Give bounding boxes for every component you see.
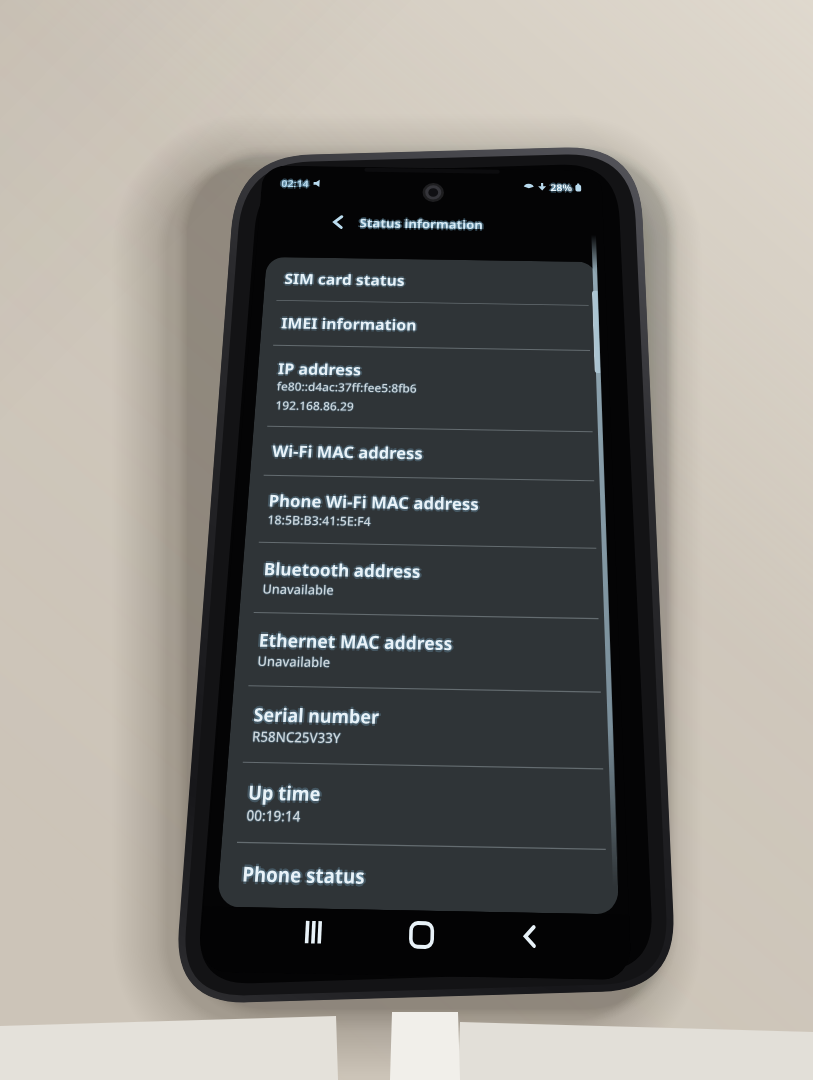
- staticText: Unavailable: [257, 651, 332, 670]
- button[interactable]: Home: [390, 910, 452, 959]
- button[interactable]: Serial number: [228, 686, 614, 769]
- staticText: fe80::d4ac:37ff:fee5:8fb6 192.168.86.29: [275, 379, 417, 416]
- button[interactable]: Recent apps: [282, 908, 345, 957]
- staticText: IMEI information: [281, 311, 418, 333]
- staticText: Phone Wi-Fi MAC address: [268, 487, 479, 513]
- staticText: Unavailable: [262, 579, 335, 598]
- staticText: Status information: [361, 214, 485, 232]
- staticText: Bluetooth address: [263, 557, 421, 583]
- staticText: 18:5B:B3:41:5E:F4: [267, 512, 372, 531]
- staticText: Wi-Fi MAC address: [271, 442, 423, 466]
- staticText: Phone Wi-Fi MAC address: [268, 491, 479, 517]
- staticText: SIM card status: [282, 269, 403, 290]
- staticText: Unavailable: [257, 653, 331, 673]
- button[interactable]: IP address: [254, 345, 602, 431]
- button[interactable]: Wi-Fi MAC address: [250, 427, 604, 480]
- button[interactable]: Back: [500, 912, 561, 961]
- staticText: fe80::d4ac:37ff:fee5:8fb6 192.168.86.29: [275, 379, 417, 415]
- staticText: SIM card status: [286, 269, 407, 290]
- staticText: SIM card status: [284, 267, 405, 288]
- staticText: Phone status: [241, 860, 365, 890]
- staticText: Wi-Fi MAC address: [271, 440, 423, 464]
- staticText: Phone status: [239, 860, 363, 890]
- staticText: IP address: [275, 358, 360, 380]
- staticText: Up time: [245, 779, 320, 807]
- staticText: Unavailable: [257, 652, 331, 671]
- staticText: 18:5B:B3:41:5E:F4: [267, 511, 372, 530]
- staticText: Unavailable: [258, 652, 332, 671]
- staticText: Wi-Fi MAC address: [270, 440, 421, 464]
- staticText: 28%: [550, 182, 573, 195]
- staticText: Unavailable: [262, 580, 335, 599]
- staticText: 18:5B:B3:41:5E:F4: [266, 511, 371, 530]
- staticText: 00:19:14: [246, 807, 301, 827]
- staticText: Unavailable: [262, 581, 335, 600]
- staticText: Unavailable: [256, 652, 330, 671]
- staticText: 00:19:14: [245, 805, 300, 826]
- staticText: 02:14: [281, 177, 309, 190]
- button[interactable]: SIM card status: [263, 257, 598, 305]
- staticText: 28%: [548, 181, 571, 194]
- staticText: 02:14: [279, 177, 307, 190]
- staticText: SIM card status: [284, 269, 405, 290]
- staticText: Bluetooth address: [265, 557, 424, 583]
- staticText: 28%: [550, 179, 573, 192]
- staticText: 18:5B:B3:41:5E:F4: [267, 510, 372, 529]
- staticText: IP address: [277, 358, 362, 380]
- staticText: Phone Wi-Fi MAC address: [266, 489, 477, 515]
- staticText: Bluetooth address: [261, 557, 419, 583]
- button[interactable]: Back: [327, 212, 349, 232]
- staticText: Phone status: [244, 860, 368, 890]
- staticText: IMEI information: [281, 313, 418, 335]
- staticText: Serial number: [255, 702, 383, 729]
- staticText: Phone Wi-Fi MAC address: [270, 489, 481, 515]
- staticText: Up time: [247, 777, 322, 804]
- staticText: R58NC25V33Y: [251, 726, 342, 746]
- staticText: fe80::d4ac:37ff:fee5:8fb6 192.168.86.29: [276, 379, 418, 415]
- staticText: Serial number: [253, 699, 380, 727]
- staticText: Status information: [357, 214, 481, 232]
- staticText: 02:14: [281, 175, 309, 188]
- button[interactable]: Phone status: [217, 843, 619, 912]
- button[interactable]: IMEI information: [260, 300, 599, 350]
- button[interactable]: Back: [258, 206, 604, 241]
- staticText: IMEI information: [280, 314, 418, 337]
- staticText: Up time: [249, 779, 324, 807]
- staticText: Serial number: [253, 702, 380, 729]
- staticText: IP address: [277, 360, 362, 382]
- staticText: Wi-Fi MAC address: [273, 440, 425, 464]
- staticText: 00:19:14: [247, 805, 302, 826]
- staticText: 28%: [552, 181, 574, 194]
- staticText: Status information: [359, 213, 483, 231]
- staticText: 18:5B:B3:41:5E:F4: [268, 511, 373, 530]
- staticText: 00:19:14: [246, 805, 301, 826]
- staticText: Status information: [359, 214, 483, 232]
- button[interactable]: Up time: [222, 762, 617, 849]
- staticText: Phone Wi-Fi MAC address: [268, 489, 479, 515]
- staticText: 00:19:14: [246, 804, 301, 825]
- staticText: R58NC25V33Y: [251, 727, 341, 748]
- button[interactable]: Ethernet MAC address: [234, 613, 611, 692]
- staticText: SIM card status: [284, 270, 405, 292]
- staticText: Bluetooth address: [263, 555, 422, 581]
- staticText: Bluetooth address: [263, 559, 421, 585]
- staticText: fe80::d4ac:37ff:fee5:8fb6 192.168.86.29: [275, 378, 417, 414]
- staticText: Unavailable: [261, 580, 334, 599]
- staticText: IMEI information: [279, 313, 416, 335]
- staticText: Serial number: [251, 702, 378, 729]
- button[interactable]: Phone Wi-Fi MAC address: [245, 475, 606, 548]
- staticText: Serial number: [253, 704, 380, 731]
- staticText: Phone status: [241, 862, 365, 892]
- staticText: Status information: [359, 216, 483, 234]
- button[interactable]: Bluetooth address: [239, 543, 609, 618]
- staticText: R58NC25V33Y: [251, 728, 342, 749]
- staticText: Ethernet MAC address: [258, 628, 453, 655]
- staticText: 02:14: [283, 177, 311, 190]
- staticText: IP address: [277, 356, 362, 378]
- staticText: 02:14: [281, 178, 309, 191]
- staticText: Ethernet MAC address: [258, 626, 453, 653]
- staticText: Phone status: [242, 857, 365, 887]
- staticText: Up time: [247, 781, 322, 809]
- staticText: Wi-Fi MAC address: [272, 438, 423, 462]
- staticText: R58NC25V33Y: [250, 727, 340, 748]
